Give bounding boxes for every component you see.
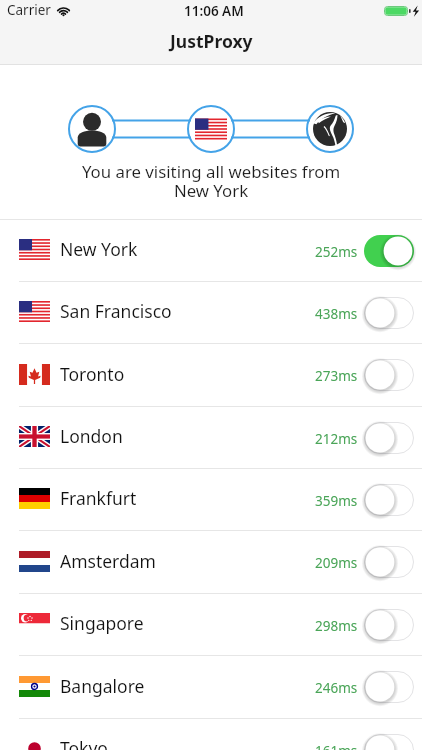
staticText: You are visiting all websites from New Y… [0,160,422,202]
staticText: 252ms [315,243,358,261]
button[interactable]: Connect [364,359,414,391]
button[interactable]: Tokyo [0,719,422,750]
button[interactable]: Amsterdam [0,531,422,593]
staticText: 212ms [315,430,358,448]
staticText: 438ms [315,305,358,323]
button[interactable]: Connect [364,546,414,578]
staticText: 11:06 AM [184,2,244,20]
staticText: Toronto [60,362,125,386]
button[interactable]: San Francisco [0,282,422,343]
staticText: Frankfurt [60,486,137,510]
button[interactable]: Connect [364,297,414,329]
staticText: London [60,424,123,448]
button[interactable]: Connect [364,734,414,750]
staticText: 298ms [315,617,358,635]
staticText: Bangalore [60,674,145,698]
button[interactable]: Frankfurt [0,469,422,530]
button[interactable]: Bangalore [0,656,422,718]
button[interactable]: Connect [364,609,414,641]
button[interactable]: Singapore [0,594,422,655]
button[interactable]: Disconnect [364,235,414,267]
staticText: Singapore [60,611,144,635]
staticText: Tokyo [60,736,108,750]
staticText: 246ms [315,679,358,697]
staticText: 273ms [315,367,358,385]
button[interactable]: Connect [364,422,414,454]
staticText: New York [60,237,138,261]
staticText: 161ms [315,742,358,750]
staticText: 209ms [315,554,358,572]
staticText: San Francisco [60,299,172,323]
button[interactable]: New York [0,220,422,281]
staticText: 359ms [315,492,358,510]
button[interactable]: London [0,407,422,468]
button[interactable]: Connect [364,671,414,703]
button[interactable]: Connect [364,484,414,516]
staticText: Amsterdam [60,549,156,573]
staticText: JustProxy [170,29,253,53]
button[interactable]: Toronto [0,344,422,406]
staticText: Carrier [7,1,51,19]
